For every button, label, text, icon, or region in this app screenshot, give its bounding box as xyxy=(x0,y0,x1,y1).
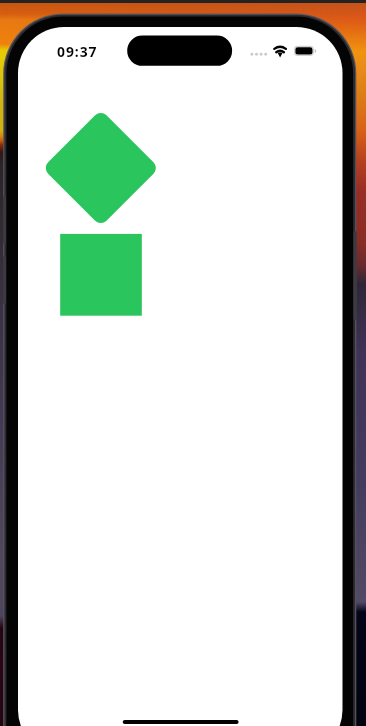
staticText: 09:37 xyxy=(57,42,98,61)
